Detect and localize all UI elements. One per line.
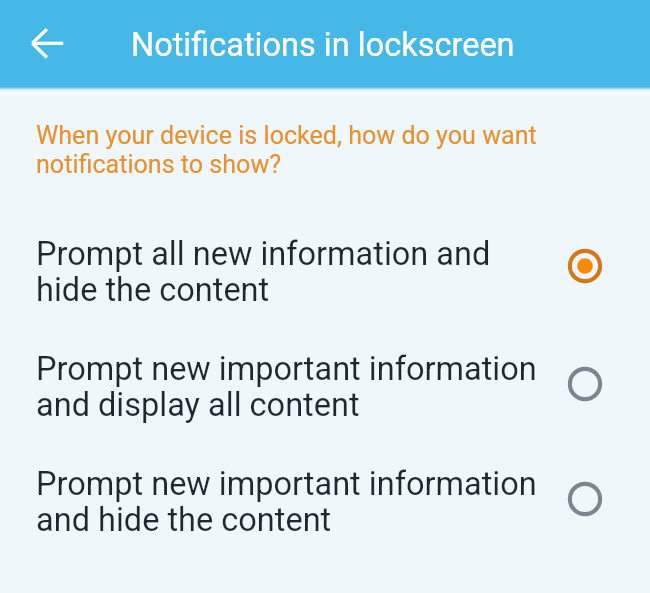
staticText: Notifications in lockscreen	[131, 26, 515, 64]
staticText: Prompt new important information and hid…	[36, 466, 545, 538]
button[interactable]: Back	[8, 17, 62, 71]
button[interactable]: Prompt all new information and hide the …	[0, 236, 650, 308]
staticText: Prompt all new information and hide the …	[36, 236, 545, 308]
button[interactable]: Prompt new important information and hid…	[0, 466, 650, 538]
staticText: Prompt new important information and dis…	[36, 351, 545, 423]
staticText: When your device is locked, how do you w…	[36, 121, 546, 179]
button[interactable]: Prompt new important information and dis…	[0, 351, 650, 423]
